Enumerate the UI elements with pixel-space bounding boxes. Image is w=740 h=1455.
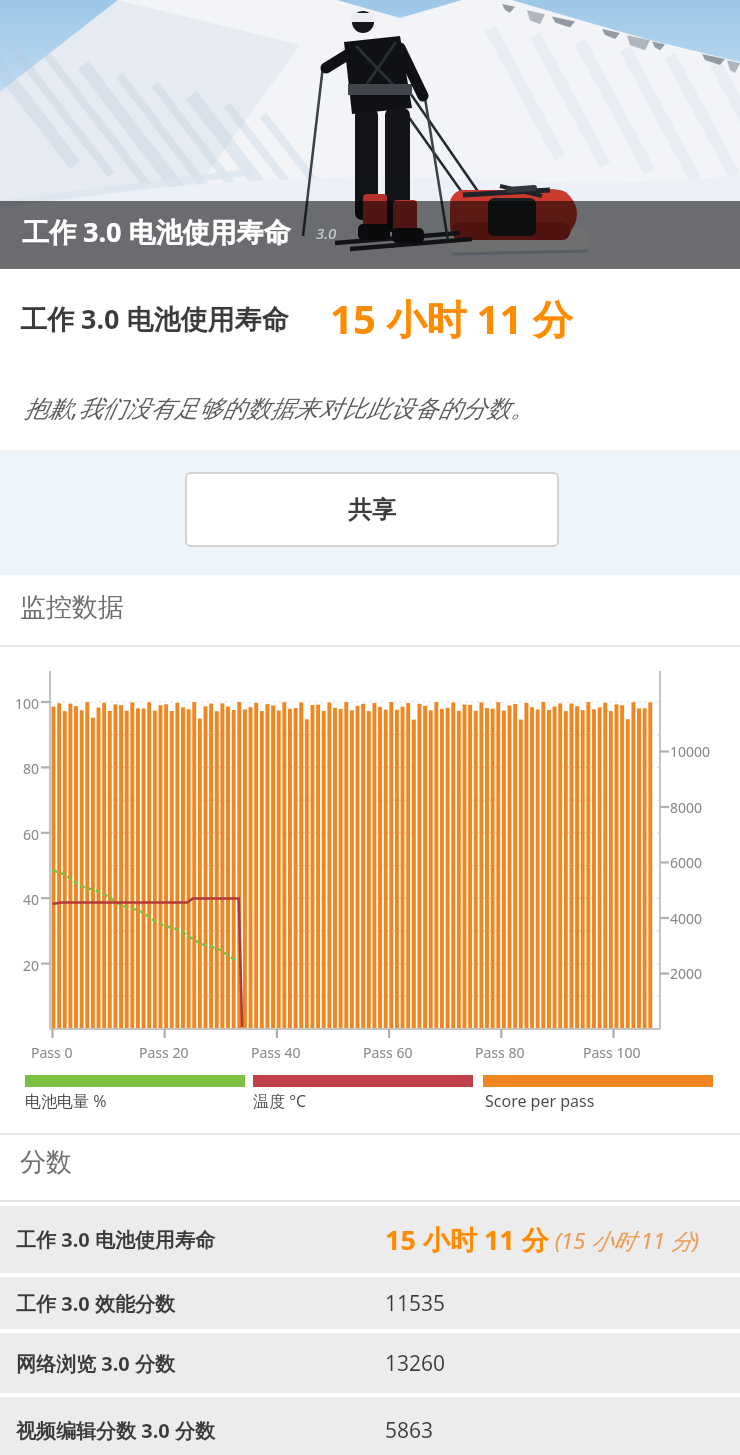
button[interactable]: 工作 3.0 电池使用寿命 — [0, 1206, 740, 1273]
staticText: 3.0 — [316, 223, 337, 243]
staticText: 40 — [23, 890, 40, 908]
staticText: 4000 — [670, 909, 703, 927]
staticText: 60 — [23, 825, 40, 843]
staticText: 监控数据 — [20, 591, 124, 624]
staticText: Pass 0 — [31, 1043, 73, 1062]
staticText: 网络浏览 3.0 分数 — [16, 1350, 175, 1377]
staticText: 电池电量 % — [25, 1090, 107, 1112]
button[interactable]: 视频编辑分数 3.0 分数 — [0, 1397, 740, 1455]
staticText: Pass 20 — [139, 1043, 189, 1062]
staticText: Pass 100 — [583, 1043, 641, 1062]
staticText: 工作 3.0 效能分数 — [16, 1290, 175, 1317]
staticText: 11535 — [385, 1289, 446, 1318]
staticText: Pass 80 — [475, 1043, 525, 1062]
staticText: 8000 — [670, 798, 703, 816]
staticText: 20 — [23, 956, 40, 974]
staticText: Pass 60 — [363, 1043, 413, 1062]
staticText: 2000 — [670, 964, 703, 982]
button[interactable]: 工作 3.0 效能分数 — [0, 1277, 740, 1329]
staticText: 5863 — [385, 1416, 434, 1445]
staticText: 80 — [23, 759, 40, 777]
staticText: 工作 3.0 电池使用寿命 — [22, 213, 291, 250]
staticText: 抱歉,我们没有足够的数据来对比此设备的分数。 — [24, 391, 535, 424]
staticText: 10000 — [670, 742, 711, 760]
staticText: 共享 — [348, 495, 396, 525]
button[interactable]: 网络浏览 3.0 分数 — [0, 1333, 740, 1393]
staticText: 工作 3.0 电池使用寿命 — [20, 300, 289, 337]
staticText: 15 小时 11 分 — [385, 1221, 549, 1258]
staticText: 视频编辑分数 3.0 分数 — [16, 1417, 215, 1444]
staticText: 100 — [15, 694, 40, 712]
staticText: Score per pass — [485, 1090, 595, 1112]
staticText: 13260 — [385, 1349, 446, 1378]
staticText: 工作 3.0 电池使用寿命 — [16, 1226, 215, 1253]
staticText: (15 小时 11 分) — [549, 1225, 700, 1255]
staticText: 6000 — [670, 853, 703, 871]
staticText: 温度 °C — [253, 1090, 307, 1112]
staticText: Pass 40 — [251, 1043, 301, 1062]
staticText: 15 小时 11 分 — [330, 291, 573, 346]
staticText: 分数 — [20, 1146, 72, 1179]
button[interactable]: 共享 — [185, 472, 559, 547]
